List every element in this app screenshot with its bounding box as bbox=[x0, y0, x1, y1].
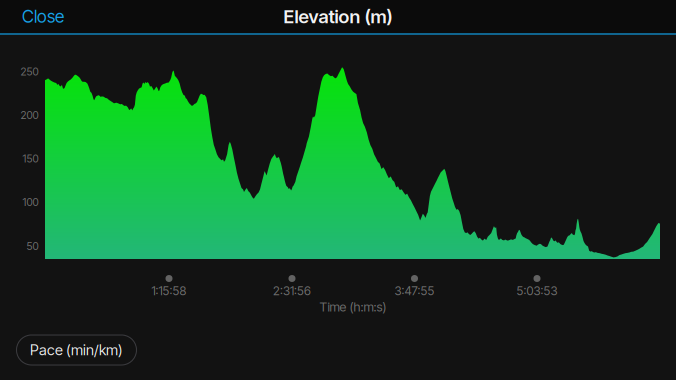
staticText: Pace (min/km) bbox=[30, 341, 123, 359]
staticText: Close bbox=[22, 6, 64, 27]
staticText: Elevation (m) bbox=[283, 5, 392, 28]
staticText: 250 bbox=[20, 65, 38, 78]
staticText: 50 bbox=[26, 239, 38, 252]
staticText: Time (h:m:s) bbox=[319, 299, 386, 315]
button[interactable]: Pace (min/km) bbox=[16, 335, 136, 365]
staticText: 200 bbox=[20, 108, 38, 121]
staticText: 5:03:53 bbox=[516, 284, 557, 298]
staticText: 3:47:55 bbox=[394, 284, 434, 298]
staticText: 2:31:56 bbox=[273, 284, 311, 298]
staticText: 150 bbox=[22, 152, 38, 165]
button[interactable]: Close bbox=[0, 0, 86, 33]
staticText: 1:15:58 bbox=[151, 284, 186, 298]
staticText: 100 bbox=[22, 195, 38, 208]
